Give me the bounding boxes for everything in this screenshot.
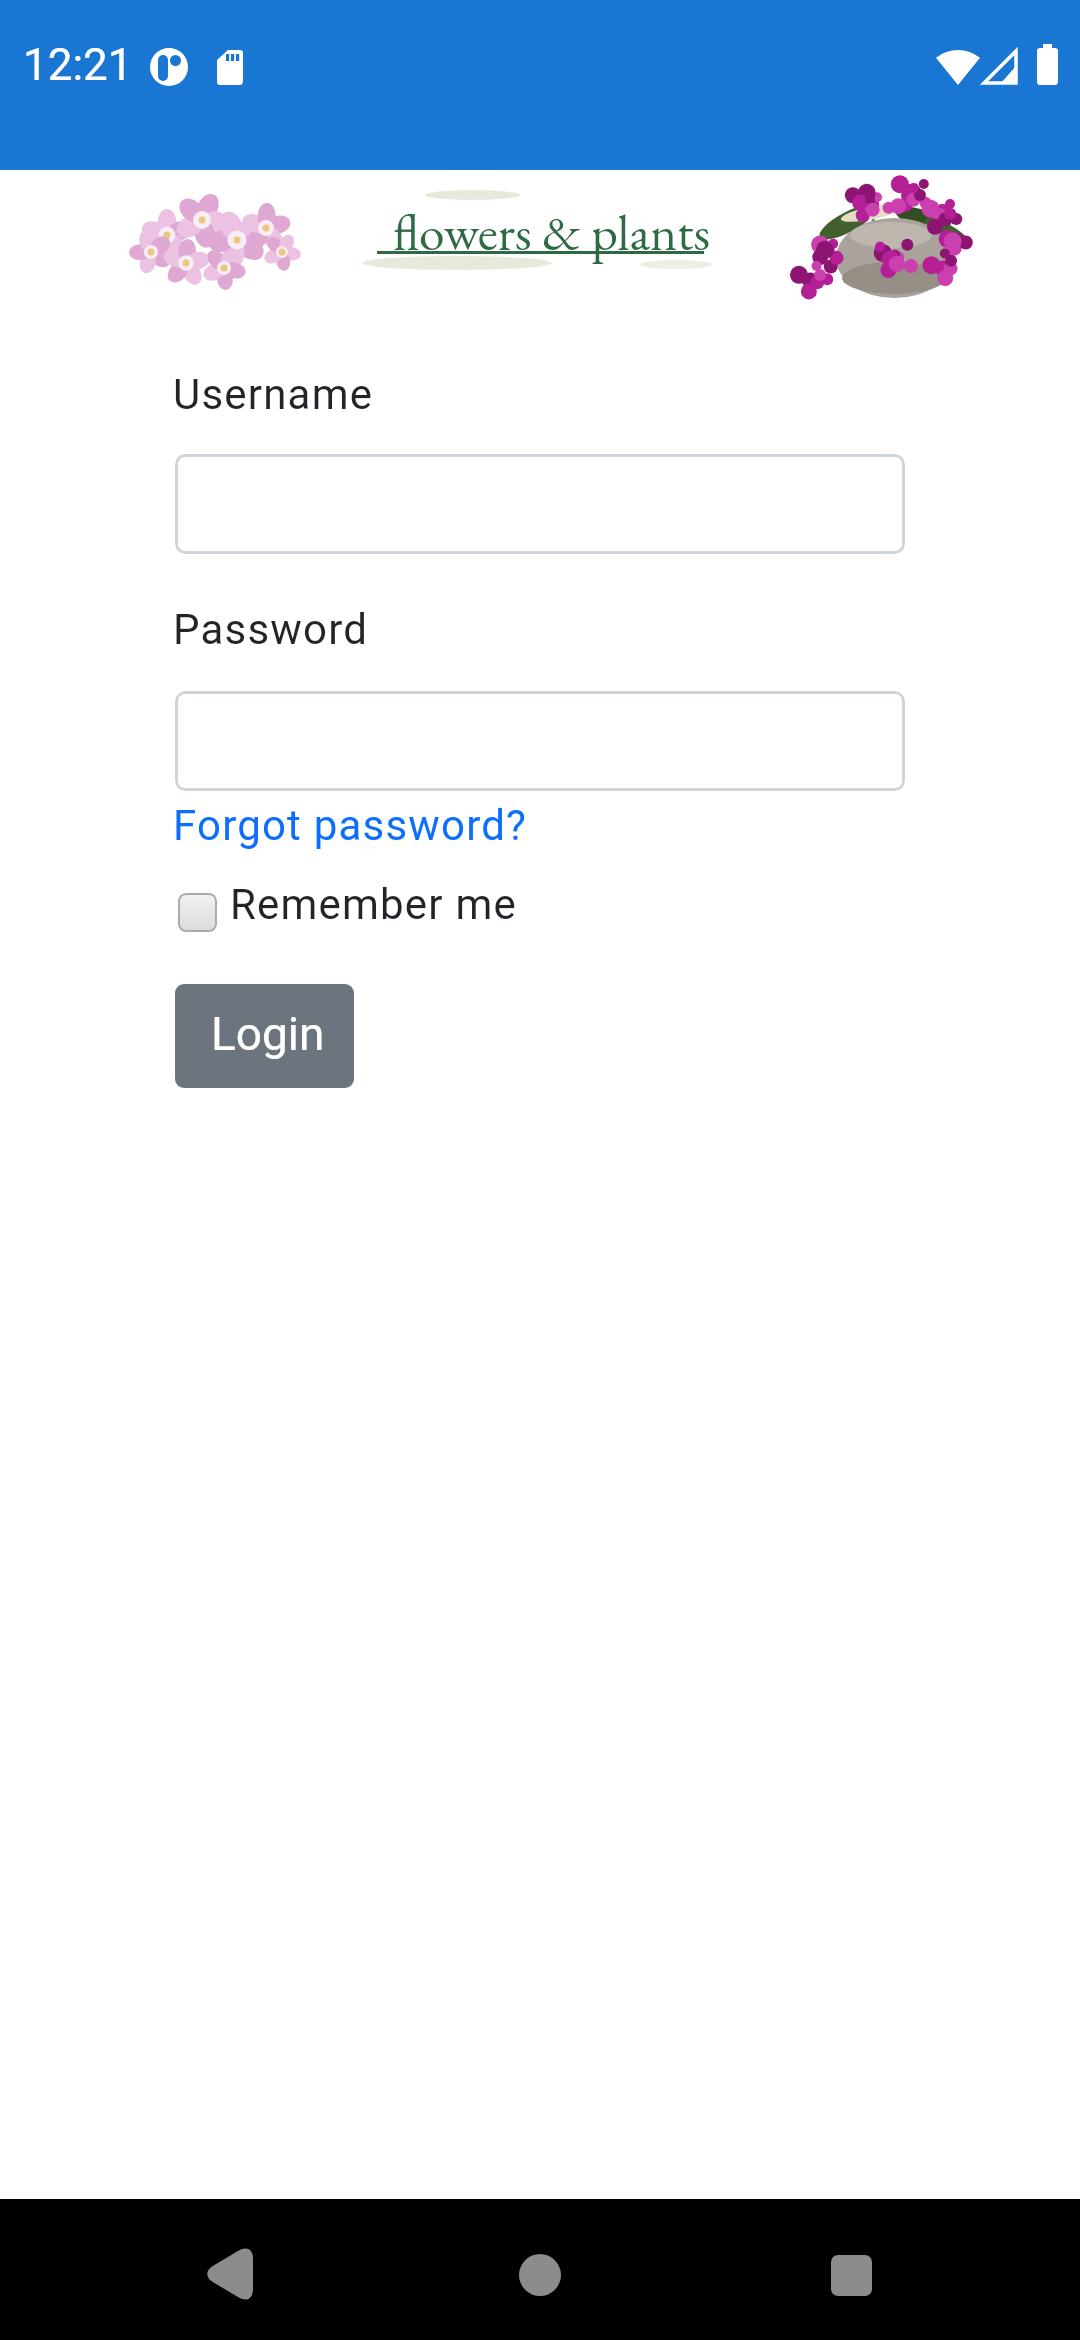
staticText: flowers & plants	[393, 198, 711, 265]
button[interactable]	[185, 2235, 265, 2315]
button[interactable]	[175, 454, 905, 554]
button[interactable]	[811, 2235, 891, 2315]
staticText: Username	[173, 370, 374, 419]
button[interactable]: Remember me	[178, 880, 523, 936]
button[interactable]	[500, 2235, 580, 2315]
staticText: Password	[173, 605, 369, 654]
staticText: Login	[211, 1007, 325, 1061]
button[interactable]	[175, 691, 905, 791]
button[interactable]: Login	[175, 984, 354, 1088]
staticText: Remember me	[230, 880, 517, 929]
staticText: Forgot password?	[173, 801, 528, 850]
staticText: 12:21	[23, 39, 133, 91]
button[interactable]: Forgot password?	[173, 801, 528, 850]
